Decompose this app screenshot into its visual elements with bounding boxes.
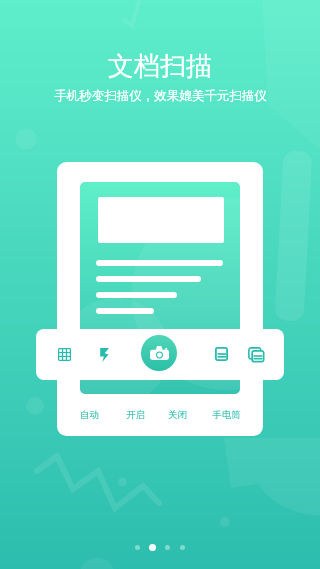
- button[interactable]: Capture: [141, 335, 177, 371]
- staticText: 手机秒变扫描仪，效果媲美千元扫描仪: [54, 88, 267, 104]
- staticText: 关闭: [168, 409, 187, 421]
- button[interactable]: 自动: [69, 406, 109, 423]
- button[interactable]: Single page: [204, 337, 238, 371]
- button[interactable]: 关闭: [157, 406, 197, 423]
- button[interactable]: 手电筒: [206, 406, 246, 423]
- staticText: 文档扫描: [108, 50, 212, 83]
- button[interactable]: Multiple pages: [239, 337, 273, 371]
- button[interactable]: Grid: [47, 337, 81, 371]
- staticText: 手电筒: [212, 409, 241, 421]
- staticText: 自动: [80, 409, 99, 421]
- button[interactable]: Flash: [87, 338, 121, 372]
- button[interactable]: 开启: [115, 406, 155, 423]
- staticText: 开启: [126, 409, 145, 421]
